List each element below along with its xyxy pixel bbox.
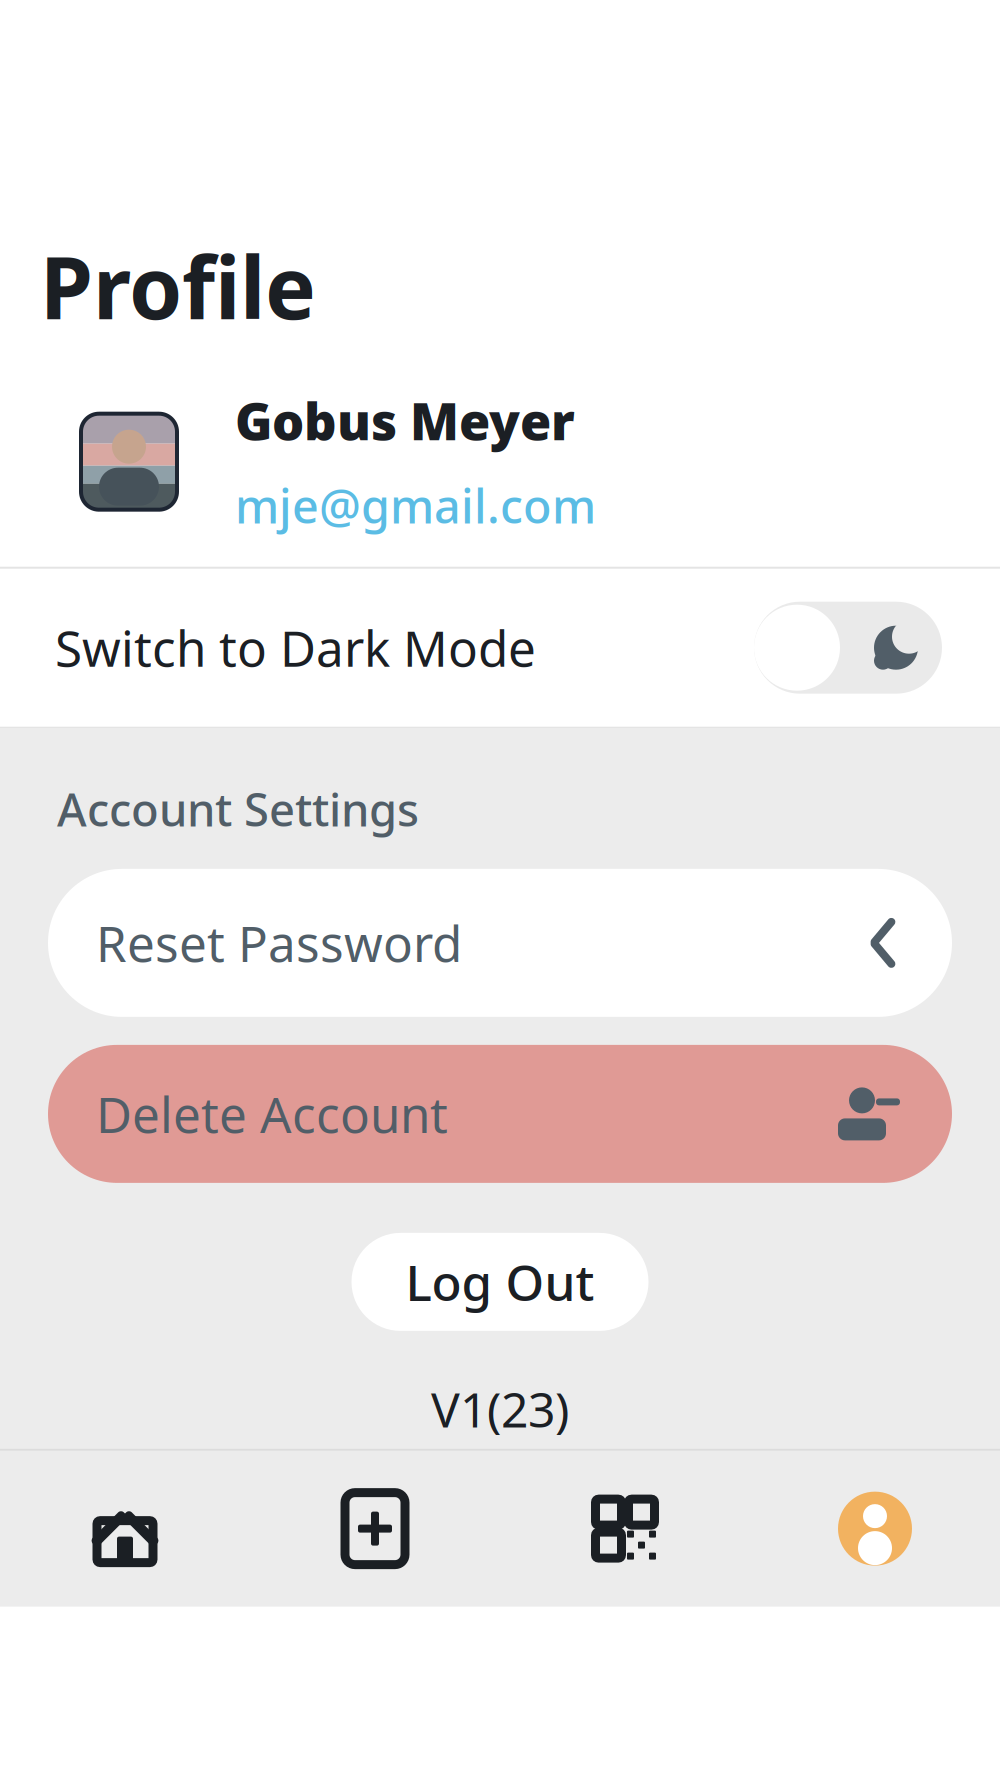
- button[interactable]: Profile: [750, 1492, 1000, 1566]
- staticText: Delete Account: [96, 1081, 448, 1147]
- staticText: Account Settings: [57, 779, 419, 839]
- button[interactable]: Scan QR code: [500, 1494, 750, 1564]
- staticText: V1(23): [431, 1377, 569, 1441]
- staticText: Reset Password: [96, 910, 462, 976]
- staticText: Switch to Dark Mode: [55, 615, 536, 680]
- button[interactable]: Reset Password: [48, 869, 952, 1017]
- staticText: Gobus Meyer: [235, 387, 575, 454]
- staticText: Profile: [40, 229, 316, 343]
- button[interactable]: Switch to Dark Mode: [0, 569, 1000, 727]
- button[interactable]: Home: [0, 1494, 250, 1564]
- button[interactable]: Gobus Meyer: [0, 343, 1000, 567]
- staticText: Log Out: [405, 1249, 594, 1315]
- button[interactable]: Log Out: [351, 1233, 648, 1331]
- staticText: mje@gmail.com: [235, 474, 596, 536]
- button[interactable]: Create: [250, 1490, 500, 1568]
- button[interactable]: Delete Account: [48, 1045, 952, 1183]
